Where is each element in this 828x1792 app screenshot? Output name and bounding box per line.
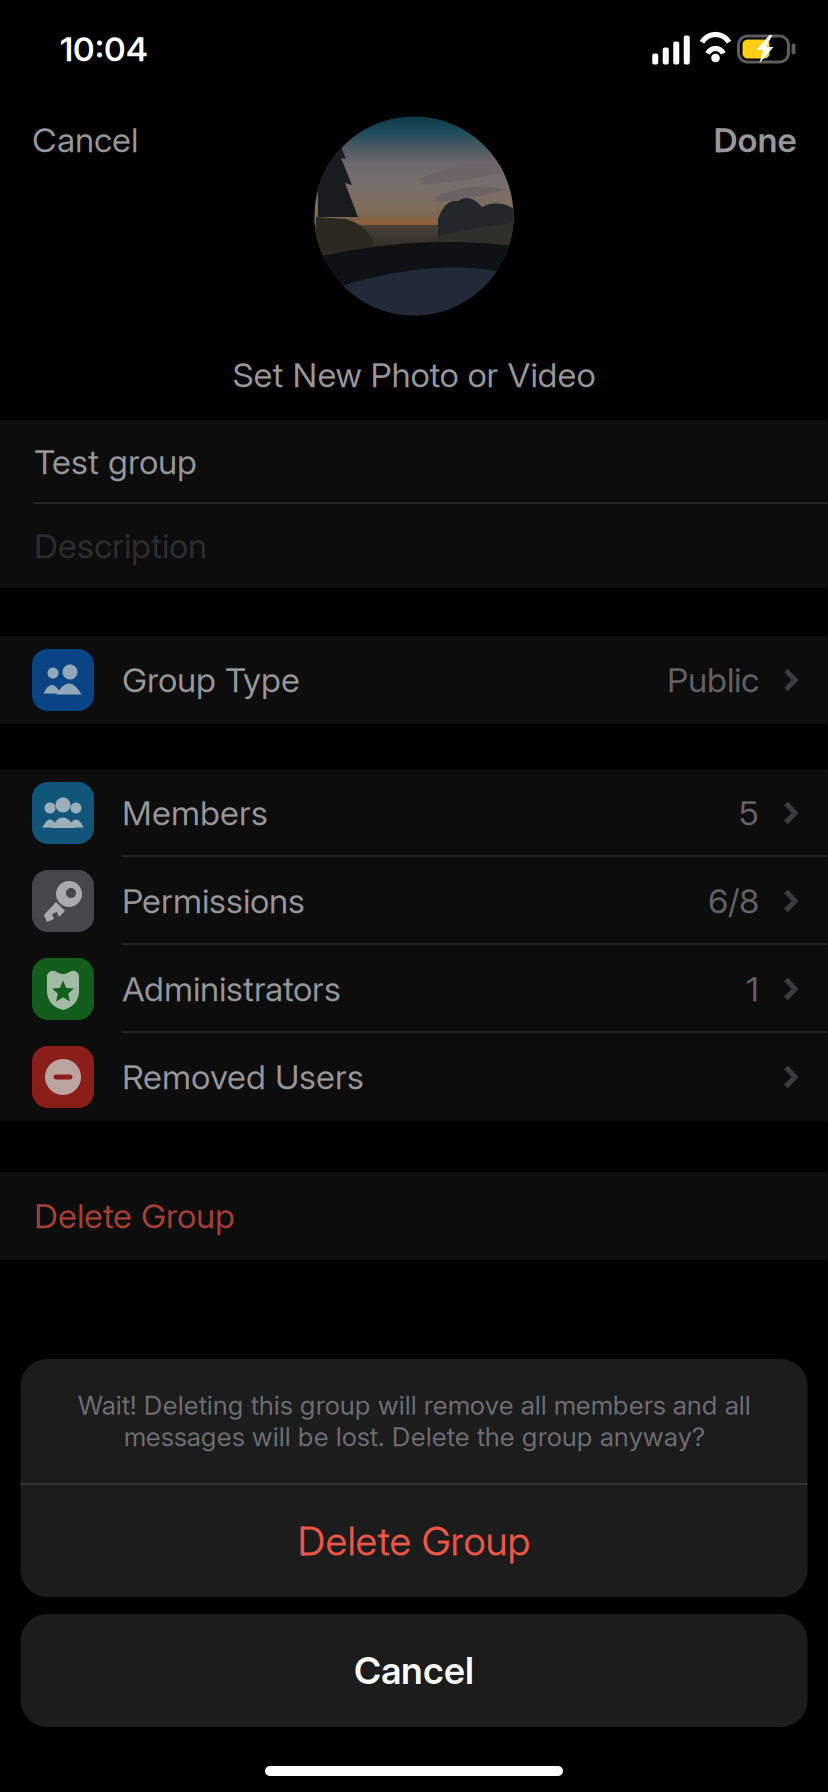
staticText: Removed Users [122, 1056, 364, 1097]
staticText: Set New Photo or Video [232, 354, 595, 395]
staticText: Test group [34, 441, 197, 482]
staticText: Group Type [122, 659, 300, 700]
staticText: Members [122, 792, 268, 833]
staticText: Description [34, 525, 207, 566]
button[interactable]: Description [0, 504, 828, 588]
button[interactable]: Cancel [12, 99, 158, 180]
staticText: 10:04 [60, 29, 148, 69]
button[interactable]: Delete Group [0, 1172, 828, 1260]
button[interactable]: Permissions [0, 857, 828, 945]
staticText: Cancel [354, 1648, 474, 1693]
button[interactable]: Group Type [0, 636, 828, 724]
staticText: Done [713, 119, 796, 160]
staticText: Delete Group [297, 1517, 530, 1565]
button[interactable]: Done [693, 99, 816, 180]
button[interactable]: Cancel [20, 1614, 807, 1727]
staticText: Administrators [122, 968, 341, 1009]
button[interactable]: Delete Group [20, 1485, 807, 1597]
staticText: Cancel [32, 119, 138, 160]
staticText: 5 [739, 792, 759, 833]
staticText: Wait! Deleting this group will remove al… [77, 1389, 750, 1452]
staticText: 1 [746, 968, 759, 1009]
staticText: Public [667, 659, 759, 700]
button[interactable]: Administrators [0, 945, 828, 1033]
button[interactable]: Removed Users [0, 1033, 828, 1121]
staticText: 6/8 [708, 880, 759, 921]
button[interactable]: Members [0, 769, 828, 857]
button[interactable]: Set New Photo or Video [0, 0, 828, 420]
button[interactable]: Test group [0, 420, 828, 504]
staticText: Delete Group [34, 1195, 235, 1236]
staticText: Permissions [122, 880, 305, 921]
